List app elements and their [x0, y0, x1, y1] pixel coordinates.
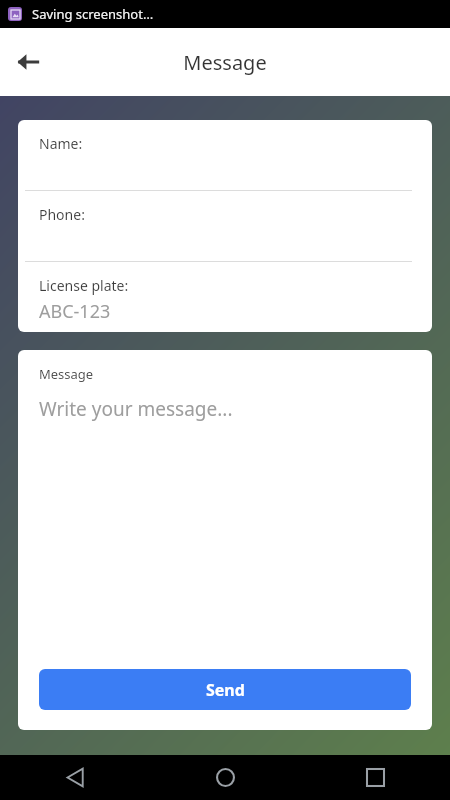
staticText: Name: — [39, 134, 83, 153]
staticText: ABC-123 — [39, 299, 111, 324]
staticText: Phone: — [39, 205, 85, 224]
button[interactable]: Back — [4, 38, 52, 86]
button[interactable]: Back — [0, 755, 150, 800]
staticText: Message — [39, 365, 94, 383]
staticText: Write your message... — [39, 396, 233, 422]
staticText: License plate: — [39, 276, 129, 295]
button[interactable]: Recent apps — [300, 755, 450, 800]
button[interactable]: Phone: — [18, 191, 432, 261]
button[interactable]: License plate: — [18, 262, 432, 332]
staticText: Message — [183, 49, 267, 76]
button[interactable]: Home — [150, 755, 300, 800]
button[interactable]: Name: — [18, 120, 432, 190]
button[interactable]: Send — [39, 669, 411, 710]
staticText: Send — [206, 679, 245, 701]
button[interactable]: Write your message... — [39, 383, 411, 669]
staticText: Saving screenshot… — [32, 5, 154, 23]
